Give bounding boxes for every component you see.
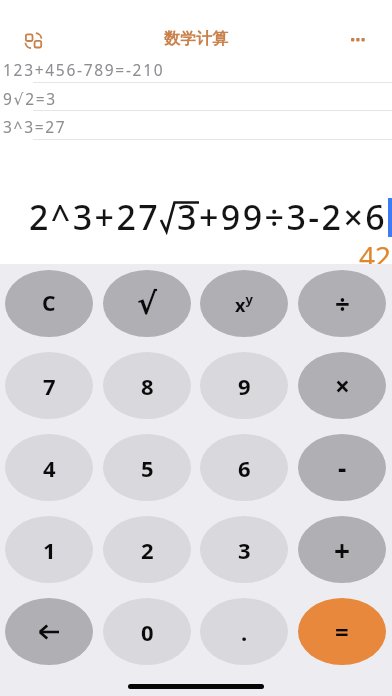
- staticText: 4: [43, 453, 56, 483]
- staticText: √: [137, 286, 158, 321]
- button[interactable]: 4: [5, 434, 93, 501]
- button[interactable]: C: [5, 270, 93, 337]
- button[interactable]: =: [298, 598, 386, 665]
- button[interactable]: 9√2=3: [0, 85, 392, 111]
- staticText: 9: [238, 371, 251, 401]
- button[interactable]: 3^3=27: [0, 113, 392, 139]
- button[interactable]: [5, 598, 93, 665]
- staticText: -: [338, 450, 347, 485]
- staticText: xy: [235, 290, 253, 317]
- button[interactable]: xy: [200, 270, 288, 337]
- staticText: +: [334, 531, 351, 569]
- staticText: 6: [238, 453, 251, 483]
- staticText: 2^3+27: [29, 194, 161, 240]
- staticText: 42: [359, 237, 392, 265]
- button[interactable]: 123+456-789=-210: [0, 57, 392, 83]
- staticText: 2: [141, 535, 154, 565]
- staticText: .: [241, 617, 248, 647]
- button[interactable]: 2: [103, 516, 191, 583]
- button[interactable]: .: [200, 598, 288, 665]
- button[interactable]: ×: [298, 352, 386, 419]
- staticText: C: [42, 289, 56, 318]
- staticText: ×: [335, 368, 350, 403]
- staticText: 1: [43, 535, 56, 565]
- button[interactable]: 3: [200, 516, 288, 583]
- button[interactable]: 6: [200, 434, 288, 501]
- button[interactable]: -: [298, 434, 386, 501]
- staticText: 3^3=27: [3, 116, 67, 137]
- button[interactable]: 0: [103, 598, 191, 665]
- button[interactable]: +: [298, 516, 386, 583]
- button[interactable]: ÷: [298, 270, 386, 337]
- staticText: 3: [177, 194, 199, 240]
- button[interactable]: √: [103, 270, 191, 337]
- button[interactable]: [16, 24, 50, 56]
- staticText: =: [335, 615, 349, 648]
- button[interactable]: 9: [200, 352, 288, 419]
- staticText: 123+456-789=-210: [3, 59, 165, 80]
- staticText: +99÷3-2×6: [199, 194, 388, 240]
- staticText: 9√2=3: [3, 88, 57, 109]
- staticText: 数学计算: [164, 29, 228, 49]
- staticText: 5: [141, 453, 154, 483]
- staticText: 8: [141, 371, 154, 401]
- button[interactable]: 7: [5, 352, 93, 419]
- staticText: 0: [141, 617, 154, 647]
- button[interactable]: 8: [103, 352, 191, 419]
- button[interactable]: 1: [5, 516, 93, 583]
- staticText: 3: [238, 535, 251, 565]
- button[interactable]: 5: [103, 434, 191, 501]
- staticText: ÷: [335, 286, 350, 321]
- button[interactable]: [342, 28, 374, 52]
- staticText: 7: [43, 371, 56, 401]
